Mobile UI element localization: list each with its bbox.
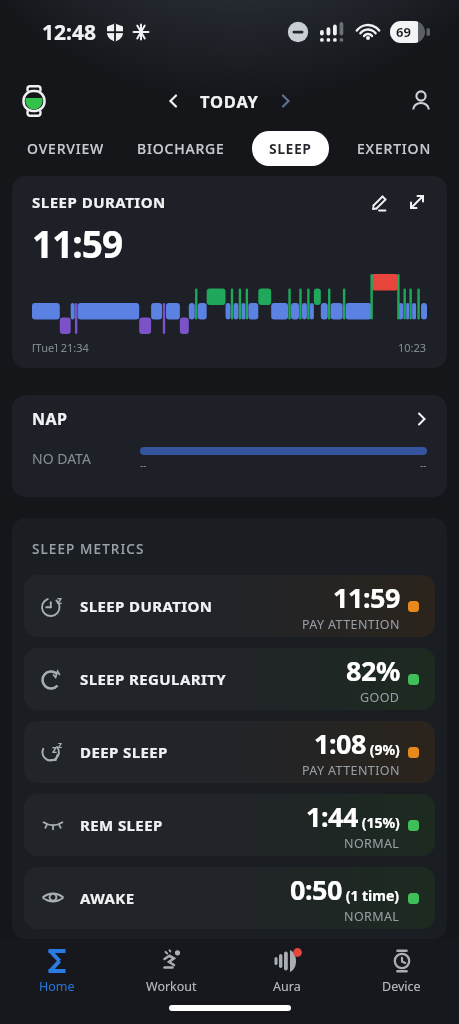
staticText: 10:23 [398, 340, 427, 352]
staticText: -- [140, 458, 147, 472]
button[interactable]: z [24, 721, 435, 783]
button[interactable] [409, 89, 433, 113]
staticText: 82% [346, 652, 400, 689]
staticText: SLEEP DURATION [32, 192, 166, 212]
button[interactable] [168, 93, 178, 109]
button[interactable]: EXERTION [353, 131, 436, 166]
staticText: 11:59 [333, 579, 400, 616]
staticText: DEEP SLEEP [80, 742, 168, 762]
staticText: OVERVIEW [27, 139, 105, 158]
staticText: 0:50 [290, 871, 342, 908]
staticText: 12:48 [42, 18, 96, 47]
staticText: PAY ATTENTION [302, 762, 400, 779]
staticText: GOOD [360, 689, 400, 706]
staticText: z [58, 739, 62, 750]
staticText: [Tue] 21:34 [32, 340, 89, 352]
staticText: SLEEP REGULARITY [80, 669, 226, 689]
staticText: EXERTION [357, 139, 432, 158]
button[interactable] [407, 192, 427, 212]
staticText: NAP [32, 408, 68, 430]
button[interactable] [281, 93, 291, 109]
button[interactable] [370, 192, 390, 212]
staticText: TODAY [200, 90, 259, 112]
staticText: z [57, 593, 62, 607]
staticText: NORMAL [344, 908, 400, 925]
staticText: REM SLEEP [80, 815, 163, 835]
staticText: NORMAL [344, 835, 400, 852]
button[interactable]: Aura [229, 946, 344, 995]
staticText: Workout [146, 978, 197, 995]
staticText: SLEEP METRICS [32, 540, 145, 558]
button[interactable]: REM SLEEP [24, 794, 435, 856]
staticText: SLEEP DURATION [80, 596, 213, 616]
button[interactable]: BIOCHARGE [133, 131, 229, 166]
staticText: (9%) [366, 740, 400, 759]
staticText: z [52, 742, 57, 756]
staticText: BIOCHARGE [137, 139, 225, 158]
button[interactable]: Workout [114, 946, 229, 995]
button[interactable]: OVERVIEW [23, 131, 109, 166]
staticText: PAY ATTENTION [302, 616, 400, 633]
staticText: Device [382, 978, 421, 995]
button[interactable]: z [24, 575, 435, 637]
staticText: Home [39, 978, 75, 995]
staticText: NO DATA [32, 449, 91, 468]
button[interactable]: SLEEP REGULARITY [24, 648, 435, 710]
button[interactable]: Device [344, 946, 459, 995]
button[interactable]: SLEEP DURATION [12, 176, 447, 368]
button[interactable]: AWAKE [24, 867, 435, 929]
staticText: (1 time) [342, 886, 400, 905]
button[interactable] [18, 85, 50, 117]
button[interactable]: Home [0, 946, 114, 995]
staticText: 69 [396, 23, 411, 41]
staticText: 1:44 [306, 798, 358, 835]
staticText: (15%) [358, 813, 400, 832]
staticText: SLEEP [269, 139, 312, 158]
button[interactable]: NAP [12, 395, 447, 497]
staticText: AWAKE [80, 888, 135, 908]
staticText: 11:59 [32, 218, 123, 268]
staticText: Aura [273, 978, 301, 995]
button[interactable]: SLEEP [252, 131, 329, 166]
staticText: 1:08 [314, 725, 366, 762]
staticText: -- [420, 458, 427, 472]
